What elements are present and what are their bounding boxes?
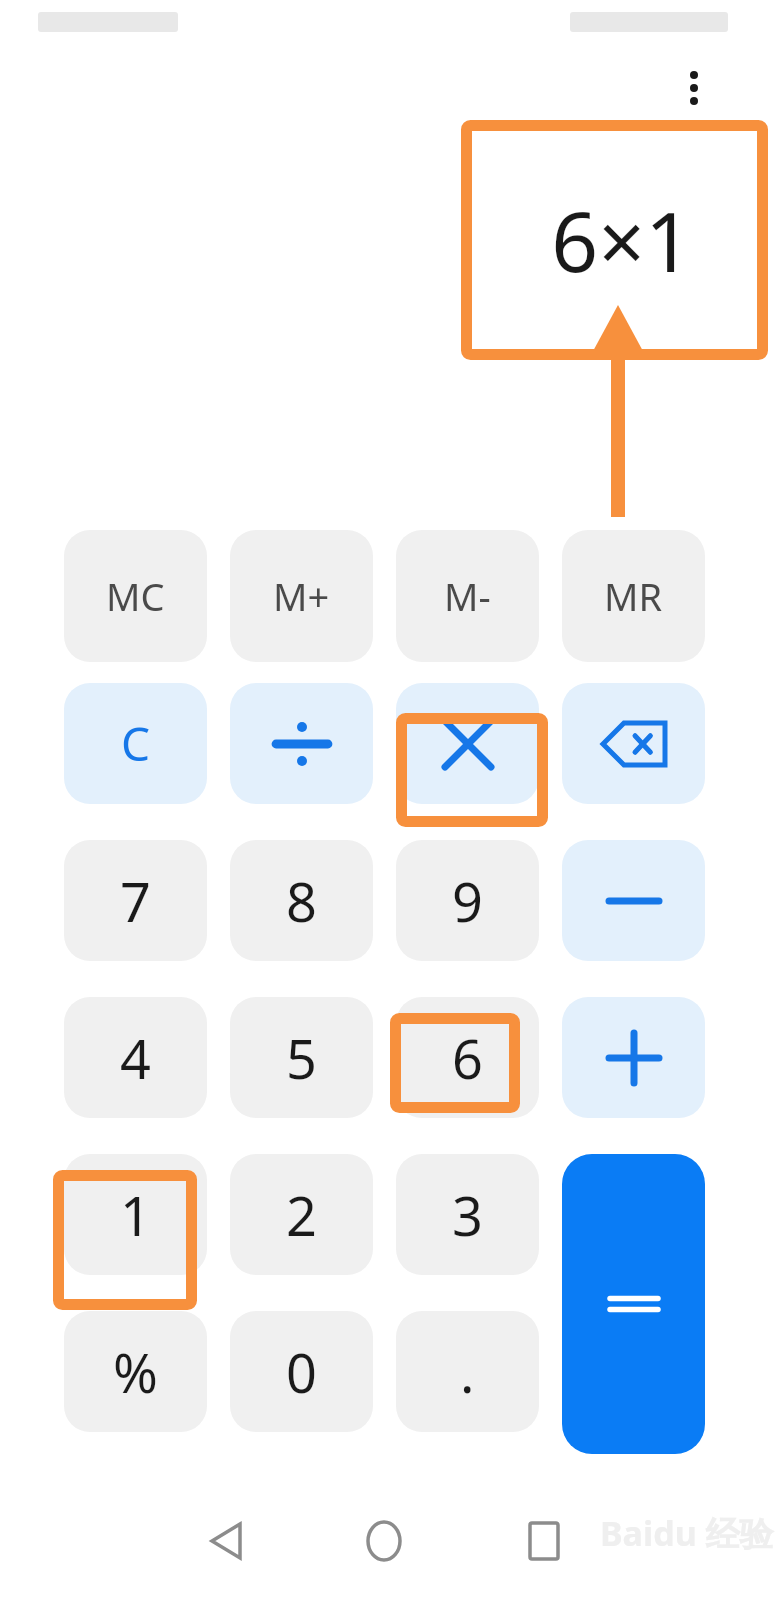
staticText: 5 <box>286 1021 317 1095</box>
button[interactable]: M+ <box>230 530 373 662</box>
staticText: 6 <box>452 1021 483 1095</box>
button[interactable]: MC <box>64 530 207 662</box>
staticText: 8 <box>286 864 317 938</box>
button[interactable]: 1 <box>64 1154 207 1275</box>
staticText: MR <box>604 570 663 622</box>
button[interactable] <box>562 1154 705 1454</box>
staticText: 9 <box>452 864 483 938</box>
button[interactable]: Minus <box>562 840 705 961</box>
button[interactable]: 3 <box>396 1154 539 1275</box>
button[interactable]: Back <box>186 1482 266 1600</box>
button[interactable]: 9 <box>396 840 539 961</box>
button[interactable]: 7 <box>64 840 207 961</box>
button[interactable]: 2 <box>230 1154 373 1275</box>
staticText: 3 <box>452 1178 483 1252</box>
staticText: 4 <box>120 1021 151 1095</box>
button[interactable]: . <box>396 1311 539 1432</box>
button[interactable]: Divide <box>230 683 373 804</box>
button[interactable]: Home <box>344 1482 424 1600</box>
button[interactable]: 0 <box>230 1311 373 1432</box>
button[interactable]: 6×1 <box>200 130 760 350</box>
button[interactable]: 4 <box>64 997 207 1118</box>
staticText: M- <box>444 570 491 622</box>
button[interactable]: Recent apps <box>504 1482 584 1600</box>
button[interactable]: % <box>64 1311 207 1432</box>
button[interactable]: M- <box>396 530 539 662</box>
staticText: 1 <box>120 1178 151 1252</box>
staticText: Baidu 经验 <box>600 1510 774 1556</box>
staticText: % <box>113 1335 158 1409</box>
button[interactable]: Backspace <box>562 683 705 804</box>
staticText: M+ <box>273 570 330 622</box>
button[interactable]: Plus <box>562 997 705 1118</box>
staticText: 6×1 <box>551 184 692 296</box>
button[interactable]: More options <box>672 66 716 110</box>
staticText: C <box>121 712 151 775</box>
staticText: 7 <box>120 864 151 938</box>
button[interactable]: Multiply <box>396 683 539 804</box>
staticText: . <box>460 1335 475 1409</box>
staticText: MC <box>106 570 165 622</box>
button[interactable]: 8 <box>230 840 373 961</box>
button[interactable]: MR <box>562 530 705 662</box>
staticText: 2 <box>286 1178 317 1252</box>
staticText: 0 <box>286 1335 317 1409</box>
button[interactable]: 5 <box>230 997 373 1118</box>
button[interactable]: Clear <box>64 683 207 804</box>
button[interactable]: 6 <box>396 997 539 1118</box>
